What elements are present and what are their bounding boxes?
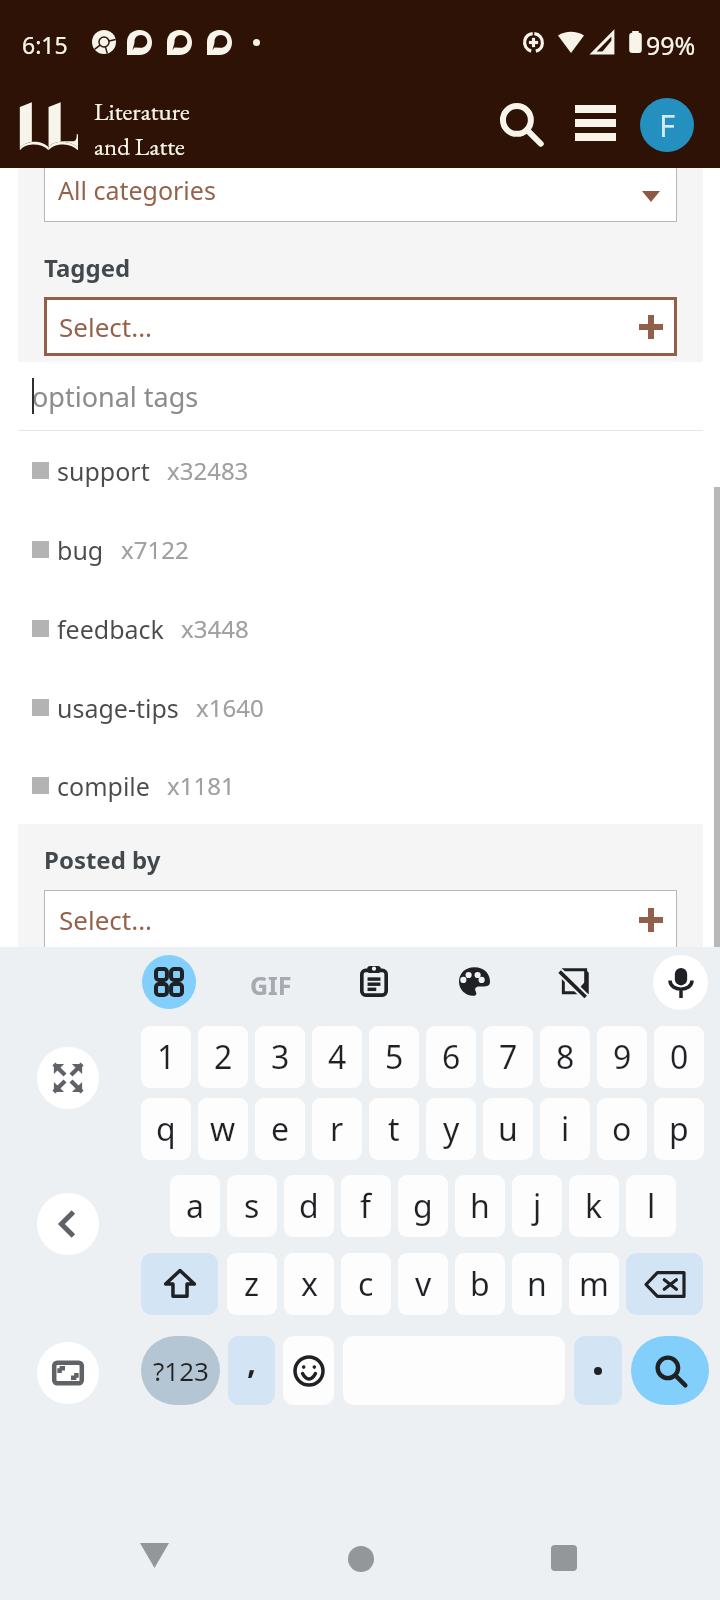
button[interactable]: f [341,1175,391,1237]
staticText: optional tags [32,378,199,415]
button[interactable]: ?123 [141,1336,220,1405]
staticText: x3448 [181,612,249,645]
button[interactable]: c [341,1253,391,1315]
button[interactable]: Clipboard [350,957,398,1005]
button[interactable]: Themes [450,957,498,1005]
button[interactable]: compile [18,747,703,824]
button[interactable]: bug [18,510,703,589]
button[interactable]: 5 [369,1026,419,1088]
button[interactable]: Resize [37,1342,99,1404]
button[interactable]: Emoji [283,1336,334,1405]
staticText: 5 [385,1035,404,1079]
button[interactable]: Search [486,89,554,157]
staticText: Select... [59,902,153,937]
button[interactable]: y [426,1098,476,1160]
button[interactable]: Search [631,1336,709,1405]
staticText: t [388,1107,400,1151]
staticText: , [247,1340,257,1384]
button[interactable]: Literature [18,95,190,163]
button[interactable]: v [398,1253,448,1315]
button[interactable]: Backspace [626,1253,703,1315]
button[interactable]: Toolbox [142,955,196,1009]
button[interactable]: 3 [255,1026,305,1088]
button[interactable]: Stickers [550,957,598,1005]
staticText: r [330,1107,344,1151]
button[interactable]: 9 [597,1026,647,1088]
staticText: ?123 [153,1353,209,1388]
button[interactable]: k [569,1175,619,1237]
button[interactable]: 6 [426,1026,476,1088]
staticText: x1640 [196,691,264,724]
button[interactable]: Back [114,1515,194,1595]
button[interactable]: n [512,1253,562,1315]
button[interactable]: d [284,1175,334,1237]
staticText: support [57,454,150,488]
staticText: d [299,1184,319,1228]
staticText: Literature [94,95,190,128]
button[interactable]: h [455,1175,505,1237]
button[interactable]: u [483,1098,533,1160]
button[interactable]: support [18,431,703,510]
button[interactable]: w [198,1098,248,1160]
button[interactable]: Comma [228,1336,275,1405]
button[interactable]: m [569,1253,619,1315]
button[interactable]: Home [321,1519,401,1599]
button[interactable]: a [170,1175,220,1237]
button[interactable]: p [654,1098,704,1160]
button[interactable]: g [398,1175,448,1237]
staticText: usage-tips [57,691,179,725]
staticText: h [470,1184,490,1228]
staticText: 4 [328,1035,347,1079]
staticText: o [612,1107,632,1151]
button[interactable]: b [455,1253,505,1315]
button[interactable]: 1 [141,1026,191,1088]
staticText: z [244,1262,260,1306]
button[interactable]: j [512,1175,562,1237]
staticText: Tagged [44,251,131,284]
button[interactable]: r [312,1098,362,1160]
staticText: 6 [442,1035,461,1079]
button[interactable]: e [255,1098,305,1160]
staticText: w [210,1107,236,1151]
button[interactable]: Period [574,1336,622,1405]
button[interactable]: l [626,1175,676,1237]
button[interactable]: F [640,98,694,152]
button[interactable]: Recents [524,1518,604,1598]
staticText: bug [57,533,104,567]
staticText: and Latte [94,130,185,163]
button[interactable]: All categories [44,168,677,222]
button[interactable]: 7 [483,1026,533,1088]
staticText: 6:15 [22,29,68,60]
button[interactable]: 0 [654,1026,704,1088]
button[interactable]: Back [37,1193,99,1255]
staticText: 7 [499,1035,518,1079]
button[interactable]: Voice input [653,955,708,1010]
button[interactable]: Select... [44,297,677,356]
button[interactable]: s [227,1175,277,1237]
staticText: All categories [58,173,216,207]
button[interactable]: feedback [18,589,703,668]
button[interactable]: z [227,1253,277,1315]
button[interactable]: Shift [141,1253,218,1315]
button[interactable]: Fullscreen [37,1047,99,1109]
staticText: g [413,1184,433,1228]
button[interactable]: x [284,1253,334,1315]
staticText: 3 [271,1035,290,1079]
staticText: Posted by [44,843,161,876]
button[interactable]: Menu [566,94,624,152]
button[interactable]: t [369,1098,419,1160]
staticText: F [659,104,676,146]
button[interactable]: 4 [312,1026,362,1088]
button[interactable]: q [141,1098,191,1160]
button[interactable]: o [597,1098,647,1160]
staticText: e [271,1107,290,1151]
staticText: 8 [556,1035,575,1079]
button[interactable]: 8 [540,1026,590,1088]
button[interactable]: i [540,1098,590,1160]
staticText: x7122 [121,533,189,566]
button[interactable]: 2 [198,1026,248,1088]
button[interactable]: usage-tips [18,668,703,747]
button[interactable]: Select... [44,890,677,949]
button[interactable]: GIF [250,968,292,1002]
